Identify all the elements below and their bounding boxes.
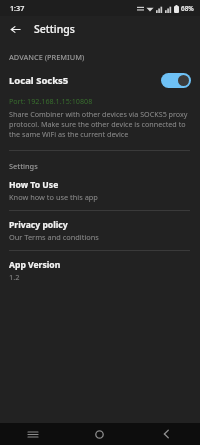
staticText: Settings <box>34 22 75 36</box>
staticText: Our Terms and conditions <box>9 232 99 242</box>
staticText: ADVANCE (PREMIUM) <box>9 52 85 62</box>
staticText: Share Combiner with other devices via SO… <box>9 109 191 139</box>
button[interactable]: Privacy policy <box>0 219 200 242</box>
button[interactable]: Back <box>4 18 26 40</box>
staticText: How To Use <box>9 179 59 191</box>
button[interactable]: How To Use <box>0 179 200 202</box>
button[interactable]: Back <box>133 423 200 445</box>
staticText: 68% <box>181 4 194 13</box>
button[interactable]: Local Socks5 <box>0 71 200 90</box>
staticText: 1:37 <box>10 3 25 13</box>
button[interactable]: Recent apps <box>0 423 66 445</box>
button[interactable]: App Version <box>0 259 200 282</box>
staticText: Port: 192.168.1.15:10808 <box>9 96 93 106</box>
staticText: Know how to use this app <box>9 192 98 202</box>
staticText: Settings <box>9 161 38 171</box>
staticText: Privacy policy <box>9 219 68 231</box>
button[interactable]: Toggle Local Socks5 <box>161 73 191 88</box>
button[interactable]: Home <box>66 423 133 445</box>
staticText: Local Socks5 <box>9 74 161 87</box>
staticText: App Version <box>9 259 61 271</box>
staticText: 1.2 <box>9 272 20 282</box>
